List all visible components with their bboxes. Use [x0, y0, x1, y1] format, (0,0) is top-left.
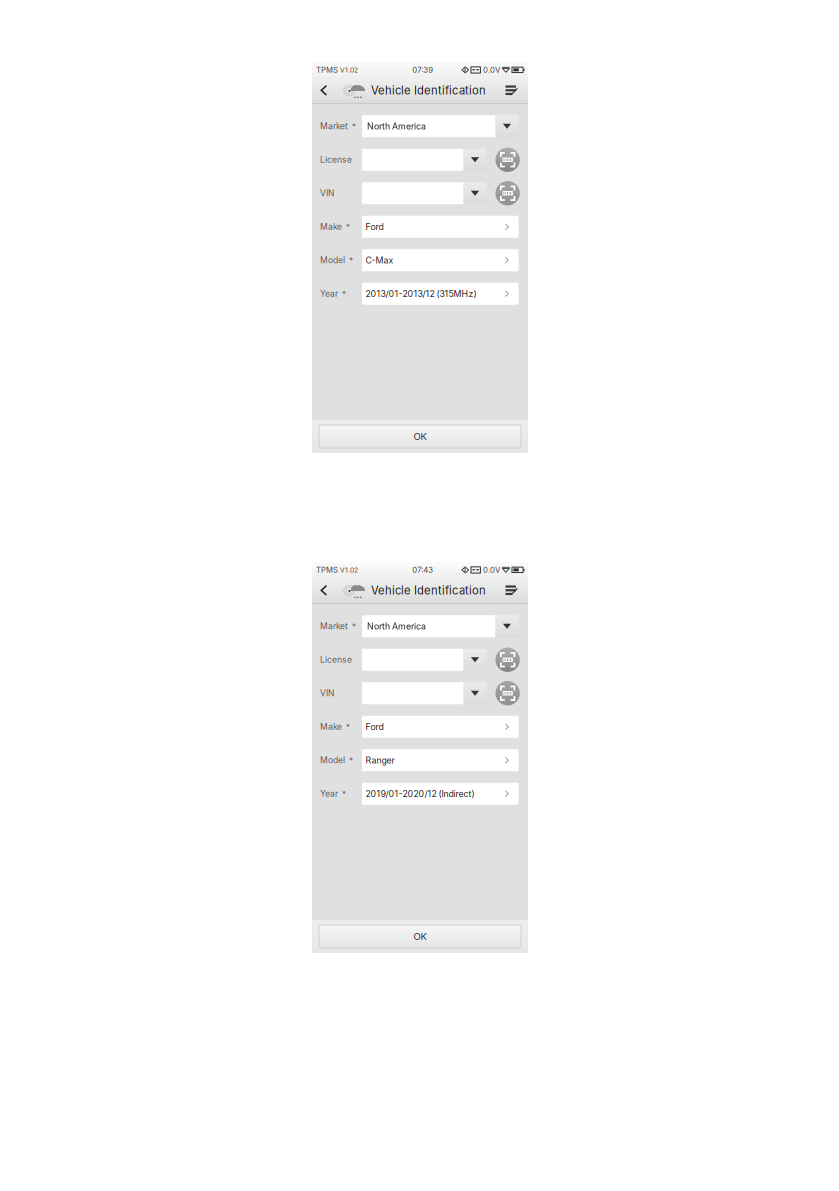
button[interactable]: Choose License — [463, 149, 486, 171]
staticText: TPMS — [316, 65, 338, 75]
button[interactable]: Scan VIN — [495, 681, 520, 705]
staticText: * — [338, 289, 346, 299]
staticText: Model — [320, 255, 345, 265]
button[interactable]: North America — [362, 115, 495, 137]
staticText: 0.0V — [483, 565, 500, 575]
staticText: OK — [413, 931, 426, 942]
staticText: Year — [320, 789, 338, 799]
staticText: Ranger — [365, 755, 394, 765]
staticText: * — [348, 121, 356, 131]
staticText: Make — [320, 722, 342, 732]
staticText: V1.02 — [338, 566, 358, 574]
staticText: Market — [320, 121, 348, 131]
staticText: Year — [320, 289, 338, 299]
staticText: Ford — [365, 221, 383, 232]
staticText: * — [345, 755, 353, 765]
staticText: C-Max — [365, 255, 393, 265]
button[interactable]: Ranger — [362, 749, 518, 771]
staticText: VIN — [354, 590, 366, 600]
button[interactable]: North America — [362, 615, 495, 637]
staticText: 2019/01-2020/12 (Indirect) — [365, 788, 474, 799]
staticText: 07:39 — [412, 65, 433, 75]
staticText: VIN — [320, 688, 334, 698]
button[interactable]: Ford — [362, 216, 518, 238]
button[interactable]: 2013/01-2013/12 (315MHz) — [362, 283, 518, 305]
staticText: V1.02 — [338, 66, 358, 74]
button[interactable]: C-Max — [362, 249, 518, 271]
staticText: Model — [320, 755, 345, 765]
staticText: Vehicle Identification — [371, 584, 486, 597]
staticText: Make — [320, 222, 342, 232]
staticText: 2013/01-2013/12 (315MHz) — [365, 288, 476, 299]
staticText: License — [320, 655, 352, 665]
staticText: Market — [320, 621, 348, 631]
staticText: * — [345, 255, 353, 265]
button[interactable]: Edit vehicle list — [502, 582, 521, 599]
button[interactable]: Scan License — [495, 148, 520, 172]
staticText: * — [342, 222, 350, 232]
staticText: 07:43 — [412, 565, 433, 575]
staticText: License — [320, 155, 352, 165]
button[interactable]: Edit vehicle list — [502, 82, 521, 99]
button[interactable]: Choose Market — [495, 115, 518, 137]
button[interactable]: Choose Market — [495, 615, 518, 637]
staticText: 0.0V — [483, 65, 500, 75]
staticText: TPMS — [316, 565, 338, 575]
staticText: * — [338, 789, 346, 799]
staticText: OK — [413, 431, 426, 442]
staticText: VIN — [320, 188, 334, 198]
staticText: North America — [367, 121, 426, 131]
staticText: Ford — [365, 721, 383, 732]
staticText: Vehicle Identification — [371, 84, 486, 97]
button[interactable]: Choose License — [463, 649, 486, 671]
staticText: VIN — [354, 90, 366, 100]
staticText: * — [342, 722, 350, 732]
button[interactable]: Choose VIN — [463, 182, 486, 204]
button[interactable]: Ford — [362, 716, 518, 738]
button[interactable]: OK — [319, 425, 521, 448]
button[interactable]: Back — [316, 78, 332, 103]
staticText: North America — [367, 621, 426, 631]
staticText: * — [348, 621, 356, 631]
button[interactable]: Scan License — [495, 648, 520, 672]
button[interactable]: 2019/01-2020/12 (Indirect) — [362, 783, 518, 805]
button[interactable]: Back — [316, 578, 332, 603]
button[interactable]: OK — [319, 925, 521, 948]
button[interactable]: Scan VIN — [495, 181, 520, 205]
button[interactable]: Choose VIN — [463, 682, 486, 704]
